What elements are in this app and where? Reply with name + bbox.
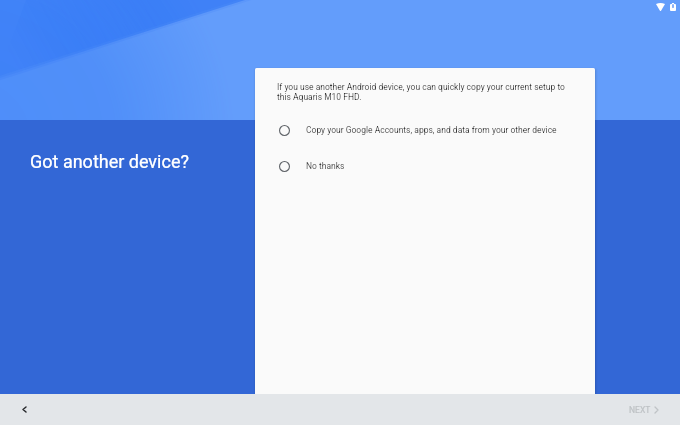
button[interactable]: Copy your Google Accounts, apps, and dat… [262, 118, 588, 142]
staticText: NEXT [629, 405, 651, 415]
button[interactable]: NEXT [629, 405, 658, 415]
other: Wi-Fi [656, 3, 665, 11]
staticText: Got another device? [30, 151, 189, 172]
staticText: No thanks [306, 161, 345, 171]
button[interactable]: No thanks [262, 154, 588, 178]
staticText: If you use another Android device, you c… [277, 82, 571, 102]
other: Battery [670, 3, 676, 11]
button[interactable]: Back [8, 394, 40, 425]
staticText: Copy your Google Accounts, apps, and dat… [306, 125, 557, 135]
